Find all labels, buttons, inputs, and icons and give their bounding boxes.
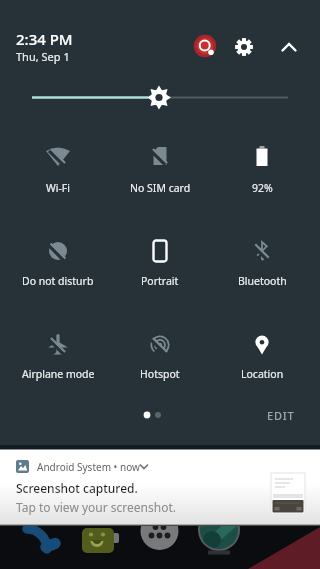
staticText: 92% [252,181,273,195]
button[interactable] [276,36,302,62]
staticText: Tap to view your screenshot. [16,499,176,515]
button[interactable]: No SIM card [109,140,211,196]
button[interactable] [231,34,257,60]
staticText: Bluetooth [238,274,287,288]
button[interactable]: Do not disturb [7,235,109,289]
button[interactable]: Bluetooth [211,235,313,289]
button[interactable] [24,85,296,111]
staticText: Hotspot [140,367,180,381]
staticText: Do not disturb [22,274,94,288]
staticText: EDIT [267,408,295,423]
button[interactable]: Portrait [109,235,211,289]
staticText: Android System • now [37,460,140,474]
staticText: Location [241,367,284,381]
button[interactable]: EDIT [256,402,306,428]
staticText: Airplane mode [22,367,95,381]
staticText: 2:34 PM [16,29,73,49]
staticText: Wi-Fi [46,181,71,195]
button[interactable]: Location [211,329,313,382]
staticText: No SIM card [130,181,191,195]
staticText: Portrait [141,274,179,288]
button[interactable]: Android System • now [0,450,320,525]
button[interactable]: Hotspot [109,329,211,382]
button[interactable]: Wi-Fi [7,140,109,196]
button[interactable]: 92% [211,140,313,196]
staticText: Thu, Sep 1 [16,49,70,64]
button[interactable] [191,33,219,61]
button[interactable]: Airplane mode [7,329,109,382]
staticText: Screenshot captured. [16,480,138,496]
